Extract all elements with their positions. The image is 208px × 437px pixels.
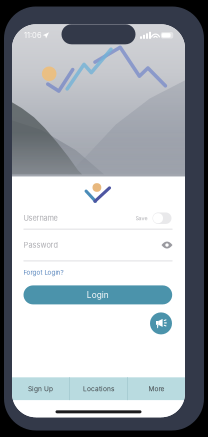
button[interactable]: Announcements [150, 312, 172, 334]
button[interactable]: Show password [161, 241, 172, 249]
staticText: Forgot Login? [23, 269, 63, 276]
staticText: Locations [83, 385, 114, 393]
staticText: Sign Up [28, 385, 53, 393]
staticText: Save [135, 215, 147, 221]
staticText: 11:06 [24, 31, 42, 40]
button[interactable]: Sign Up [12, 377, 69, 400]
staticText: Username [23, 214, 57, 223]
staticText: More [148, 385, 164, 393]
button[interactable]: Login [23, 285, 172, 304]
button[interactable]: Save credentials [152, 212, 171, 225]
button[interactable]: More [128, 377, 185, 400]
staticText: Password [23, 241, 57, 249]
button[interactable]: Forgot Login? [23, 261, 63, 283]
button[interactable]: Locations [70, 377, 127, 400]
staticText: Login [87, 290, 109, 300]
